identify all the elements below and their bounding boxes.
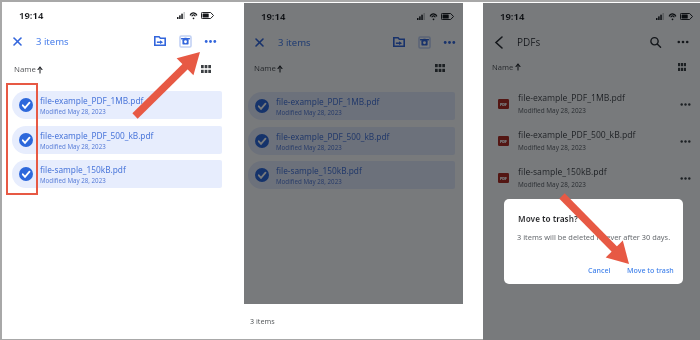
staticText: PDF: [500, 139, 507, 144]
staticText: Modified May 28, 2023: [518, 143, 586, 152]
staticText: file-example_PDF_500_kB.pdf: [518, 129, 636, 141]
staticText: file-sample_150kB.pdf: [276, 165, 362, 176]
staticText: Modified May 28, 2023: [276, 177, 342, 185]
button[interactable]: Back: [490, 33, 508, 51]
button[interactable]: Grid view: [675, 60, 689, 74]
staticText: PDFs: [517, 35, 541, 49]
button[interactable]: PDF: [483, 122, 700, 159]
staticText: 3 items: [36, 35, 69, 48]
staticText: file-example_PDF_500_kB.pdf: [276, 131, 390, 142]
staticText: Modified May 28, 2023: [518, 106, 586, 115]
button[interactable]: Name: [492, 62, 521, 72]
staticText: PDF: [500, 102, 507, 107]
staticText: Modified May 28, 2023: [40, 176, 106, 184]
button[interactable]: Move to folder: [391, 34, 407, 50]
staticText: file-example_PDF_1MB.pdf: [276, 96, 380, 107]
button[interactable]: Name: [254, 63, 283, 74]
button[interactable]: Delete: [416, 34, 432, 50]
staticText: file-example_PDF_500_kB.pdf: [40, 130, 154, 141]
staticText: 19:14: [261, 10, 286, 23]
staticText: 3 items will be deleted forever after 30…: [517, 232, 671, 242]
staticText: Name: [492, 62, 514, 72]
staticText: file-sample_150kB.pdf: [40, 164, 126, 175]
staticText: 3 items: [278, 36, 311, 49]
button[interactable]: More options: [676, 132, 694, 150]
button[interactable]: More options: [441, 34, 457, 50]
staticText: Modified May 28, 2023: [40, 107, 106, 115]
button[interactable]: file-example_PDF_1MB.pdf: [248, 92, 455, 120]
button[interactable]: Grid view: [433, 61, 447, 75]
staticText: Move to trash: [627, 265, 674, 275]
staticText: file-example_PDF_1MB.pdf: [518, 92, 626, 104]
button[interactable]: file-sample_150kB.pdf: [248, 161, 455, 189]
staticText: 19:14: [500, 10, 525, 23]
button[interactable]: Name: [14, 64, 43, 75]
button[interactable]: More options: [676, 169, 694, 187]
button[interactable]: file-sample_150kB.pdf: [12, 160, 222, 188]
button[interactable]: file-example_PDF_1MB.pdf: [12, 91, 222, 119]
staticText: 19:14: [19, 9, 44, 22]
staticText: Name: [254, 63, 276, 74]
button[interactable]: Close selection: [251, 34, 267, 50]
staticText: PDF: [500, 176, 507, 181]
button[interactable]: file-example_PDF_500_kB.pdf: [12, 126, 222, 154]
button[interactable]: More options: [674, 33, 692, 51]
staticText: Modified May 28, 2023: [518, 180, 586, 189]
staticText: Modified May 28, 2023: [276, 108, 342, 116]
button[interactable]: PDF: [483, 159, 700, 196]
staticText: Cancel: [588, 265, 611, 275]
button[interactable]: Grid view: [199, 62, 213, 76]
staticText: Modified May 28, 2023: [40, 142, 106, 150]
staticText: 3 items: [250, 316, 275, 326]
button[interactable]: Move to folder: [152, 33, 168, 49]
button[interactable]: More options: [202, 33, 218, 49]
button[interactable]: Move to trash: [625, 262, 676, 278]
staticText: Move to trash?: [518, 213, 578, 224]
button[interactable]: file-example_PDF_500_kB.pdf: [248, 127, 455, 155]
button[interactable]: Cancel: [584, 262, 615, 278]
button[interactable]: Close selection: [9, 33, 25, 49]
staticText: Name: [14, 64, 36, 75]
button[interactable]: PDF: [483, 85, 700, 122]
staticText: file-sample_150kB.pdf: [518, 166, 607, 178]
button[interactable]: More options: [676, 95, 694, 113]
button[interactable]: Delete: [177, 33, 193, 49]
staticText: Modified May 28, 2023: [276, 143, 342, 151]
staticText: file-example_PDF_1MB.pdf: [40, 95, 144, 106]
button[interactable]: Search: [646, 33, 664, 51]
